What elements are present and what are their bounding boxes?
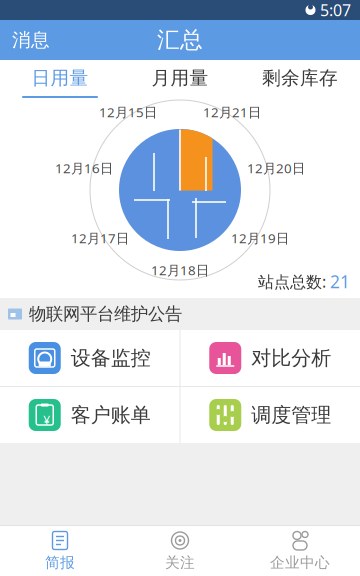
staticText: 12月19日 <box>231 229 289 247</box>
button[interactable]: 物联网平台维护公告 <box>0 298 360 330</box>
staticText: 关注 <box>165 553 195 571</box>
staticText: 21 <box>330 270 350 293</box>
staticText: 12月20日 <box>247 159 305 177</box>
staticText: 对比分析 <box>251 346 331 370</box>
staticText: 汇总 <box>157 26 203 54</box>
button[interactable]: ¥ <box>0 387 179 443</box>
button[interactable]: 消息 <box>0 20 62 60</box>
staticText: 设备监控 <box>71 346 151 370</box>
button[interactable]: 月用量 <box>120 60 240 98</box>
staticText: 客户账单 <box>71 403 151 427</box>
button[interactable]: 日用量 <box>0 60 120 98</box>
staticText: 调度管理 <box>251 403 331 427</box>
staticText: 物联网平台维护公告 <box>29 303 182 325</box>
button[interactable]: 剩余库存 <box>240 60 360 98</box>
button[interactable]: 对比分析 <box>180 330 360 386</box>
staticText: 12月21日 <box>203 103 261 121</box>
staticText: 站点总数: <box>258 271 330 292</box>
staticText: 12月15日 <box>99 103 157 121</box>
button[interactable]: 调度管理 <box>180 387 360 443</box>
staticText: 消息 <box>12 28 50 51</box>
staticText: 剩余库存 <box>262 66 338 89</box>
staticText: 5:07 <box>320 0 351 21</box>
staticText: 12月18日 <box>151 261 209 279</box>
button[interactable]: 关注 <box>120 526 240 576</box>
staticText: 12月17日 <box>71 229 129 247</box>
button[interactable]: 企业中心 <box>240 526 360 576</box>
staticText: 日用量 <box>31 66 88 89</box>
staticText: 12月16日 <box>55 159 113 177</box>
button[interactable]: 简报 <box>0 526 120 576</box>
staticText: 企业中心 <box>270 553 330 571</box>
staticText: 简报 <box>45 553 75 571</box>
button[interactable]: 设备监控 <box>0 330 179 386</box>
staticText: 月用量 <box>151 66 208 89</box>
staticText: ¥ <box>43 412 50 428</box>
